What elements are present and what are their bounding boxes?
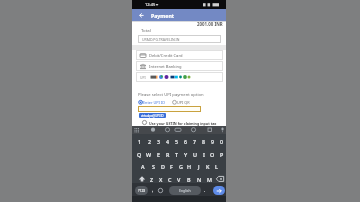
button[interactable]: Z [147,174,156,184]
staticText: Payment [151,12,175,19]
staticText: ?123 [138,188,146,193]
button[interactable]: 8 [199,136,208,146]
button[interactable]: Q [134,149,144,159]
staticText: Y [184,151,188,158]
staticText: Enter UPI ID [143,100,165,105]
staticText: Use your GSTIN for claiming input tax [149,121,217,126]
staticText: UPI QR [177,100,190,105]
staticText: 5 [175,138,178,145]
staticText: G [179,163,183,170]
button[interactable]: Y [181,149,190,159]
staticText: F [170,163,173,170]
button[interactable]: D [158,161,167,171]
staticText: UPAID.PG.TRAVELIN.IN [142,37,180,42]
button[interactable]: I [199,149,208,159]
staticText: . [204,187,206,194]
button[interactable]: B [184,174,194,184]
staticText: M [207,176,212,183]
staticText: 6 [184,138,187,145]
button[interactable]: F [167,161,176,171]
button[interactable]: Payment [132,9,226,21]
button[interactable] [138,106,201,112]
button[interactable]: 0 [217,136,226,146]
staticText: B [187,176,191,183]
staticText: O [210,151,215,158]
staticText: J [198,163,200,170]
button[interactable]: 9 [208,136,217,146]
staticText: E [157,151,161,158]
staticText: X [159,176,163,183]
staticText: C [168,176,172,183]
staticText: U [193,151,197,158]
button[interactable]: 2 [144,136,154,146]
button[interactable]: L [212,161,221,171]
button[interactable]: 3 [154,136,163,146]
button[interactable]: E [154,149,163,159]
staticText: Debit/Credit Card [149,53,183,59]
button[interactable]: A [138,161,148,171]
button[interactable]: C [165,174,174,184]
staticText: 3 [157,138,160,145]
button[interactable]: K [203,161,212,171]
staticText: English [179,188,191,193]
staticText: 7 [193,138,196,145]
button[interactable]: 5 [172,136,181,146]
staticText: 1 [138,138,141,145]
staticText: V [177,176,181,183]
button[interactable]: ?123 [135,186,148,195]
button[interactable]: G [176,161,185,171]
button[interactable]: V [174,174,184,184]
button[interactable]: N [194,174,204,184]
staticText: S [152,163,155,170]
staticText: D [161,163,165,170]
staticText: 4 [166,138,169,145]
button[interactable]: UPAID.PG.TRAVELIN.IN [138,35,221,43]
staticText: P [220,151,224,158]
staticText: H [187,163,192,170]
button[interactable]: S [148,161,158,171]
button[interactable]: Debit/Credit Card [136,50,223,60]
staticText: A [141,163,145,170]
button[interactable]: 4 [163,136,172,146]
button[interactable]: O [208,149,217,159]
staticText: virtualpe@UPI ID [141,114,164,118]
staticText: T [175,151,179,158]
button[interactable]: virtualpe@UPI ID [139,113,166,118]
staticText: , [152,187,154,194]
staticText: K [206,163,210,170]
button[interactable]: P [217,149,226,159]
button[interactable]: T [172,149,181,159]
button[interactable]: UPI [136,72,223,82]
staticText: L [215,163,218,170]
staticText: 2 [148,138,151,145]
button[interactable]: English [169,186,201,195]
button[interactable]: R [163,149,172,159]
staticText: 0 [220,138,223,145]
button[interactable]: Internet Banking [136,61,223,71]
staticText: Total [141,27,151,33]
staticText: W [146,151,152,158]
staticText: Internet Banking [149,64,182,70]
staticText: 12:45 [145,2,156,7]
staticText: 2001.00 INR [197,21,223,27]
staticText: UPI [140,75,146,80]
staticText: Q [137,151,142,158]
staticText: Z [150,176,154,183]
staticText: 8 [202,138,205,145]
staticText: N [197,176,202,183]
button[interactable]: J [194,161,203,171]
button[interactable]: X [156,174,165,184]
staticText: 9 [211,138,214,145]
button[interactable]: 1 [134,136,144,146]
button[interactable] [213,186,225,195]
button[interactable]: 7 [190,136,199,146]
button[interactable]: M [204,174,214,184]
button[interactable]: 6 [181,136,190,146]
staticText: R [166,151,170,158]
staticText: Please select UPI payment option [138,92,204,98]
button[interactable]: H [185,161,194,171]
button[interactable]: U [190,149,199,159]
staticText: I [203,151,205,158]
button[interactable]: W [144,149,154,159]
